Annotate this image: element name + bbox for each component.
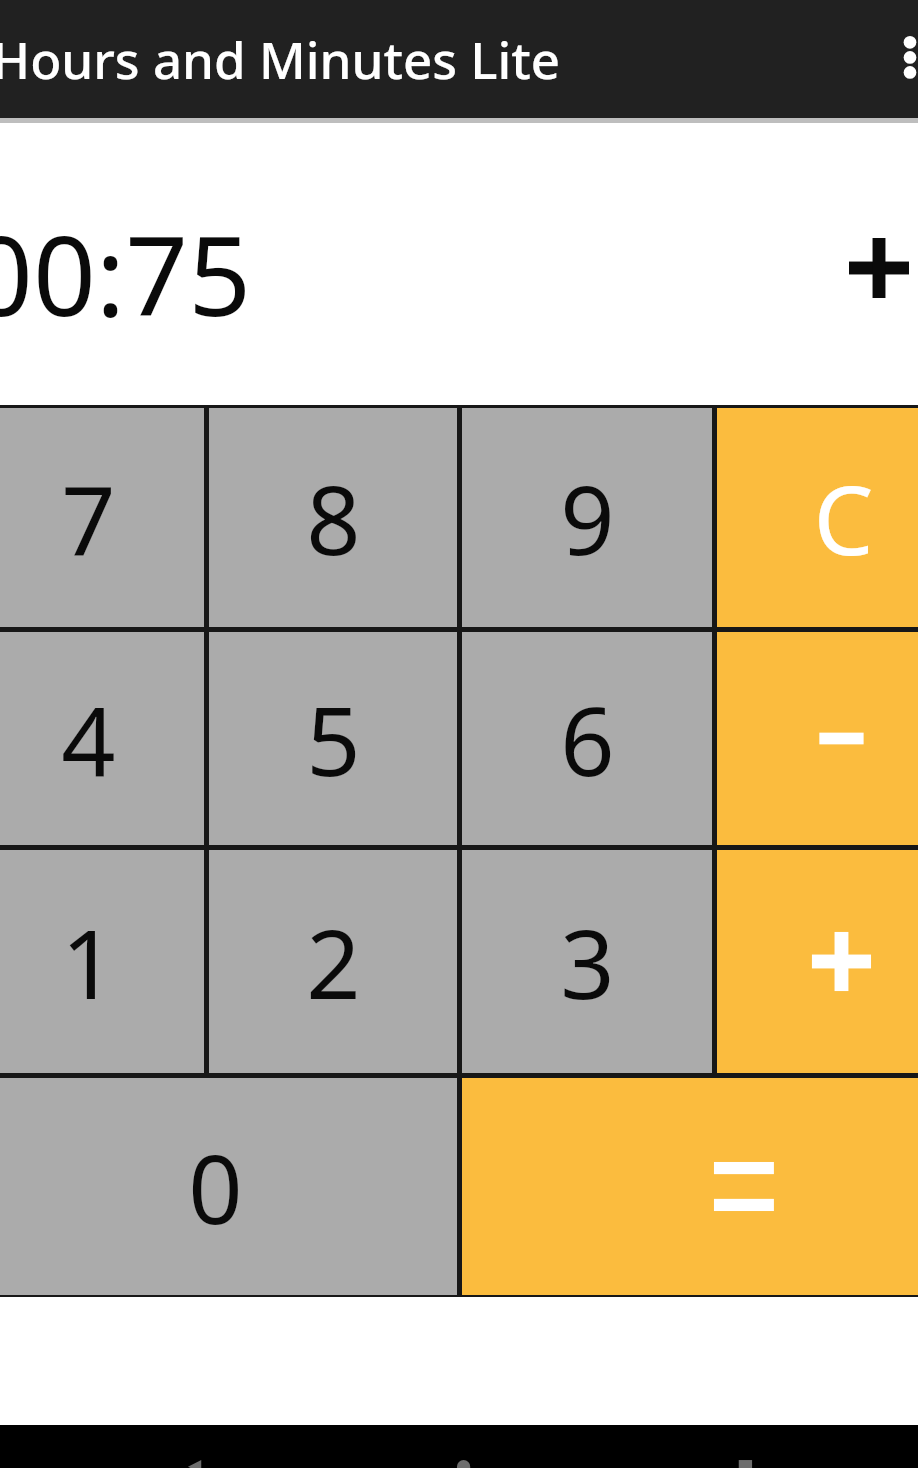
- button[interactable]: 5: [209, 632, 457, 845]
- staticText: C: [813, 453, 874, 582]
- staticText: 6: [560, 674, 615, 803]
- staticText: 0: [188, 1122, 243, 1251]
- staticText: 7: [61, 453, 116, 582]
- button[interactable]: More options: [878, 6, 918, 112]
- staticText: Hours and Minutes Lite: [0, 24, 561, 93]
- button[interactable]: Hours and Minutes Lite: [0, 18, 712, 98]
- staticText: 5: [306, 674, 361, 803]
- button[interactable]: 2: [209, 850, 457, 1073]
- staticText: 1: [61, 897, 116, 1026]
- button[interactable]: 7: [0, 408, 204, 627]
- button[interactable]: 0: [0, 1078, 457, 1295]
- staticText: 2: [306, 897, 361, 1026]
- staticText: 3: [560, 897, 615, 1026]
- staticText: 8: [306, 453, 361, 582]
- button[interactable]: 4: [0, 632, 204, 845]
- staticText: 00:75: [0, 198, 252, 340]
- button[interactable]: [0, 123, 918, 405]
- button[interactable]: 9: [462, 408, 712, 627]
- staticText: 4: [61, 674, 116, 803]
- button[interactable]: 8: [209, 408, 457, 627]
- button[interactable]: Add: [717, 850, 918, 1073]
- button[interactable]: 3: [462, 850, 712, 1073]
- button[interactable]: Clear: [717, 408, 918, 627]
- button[interactable]: Add entry: [822, 206, 918, 330]
- staticText: 9: [560, 453, 615, 582]
- button[interactable]: 1: [0, 850, 204, 1073]
- button[interactable]: 6: [462, 632, 712, 845]
- button[interactable]: Equals: [462, 1078, 918, 1295]
- button[interactable]: Subtract: [717, 632, 918, 845]
